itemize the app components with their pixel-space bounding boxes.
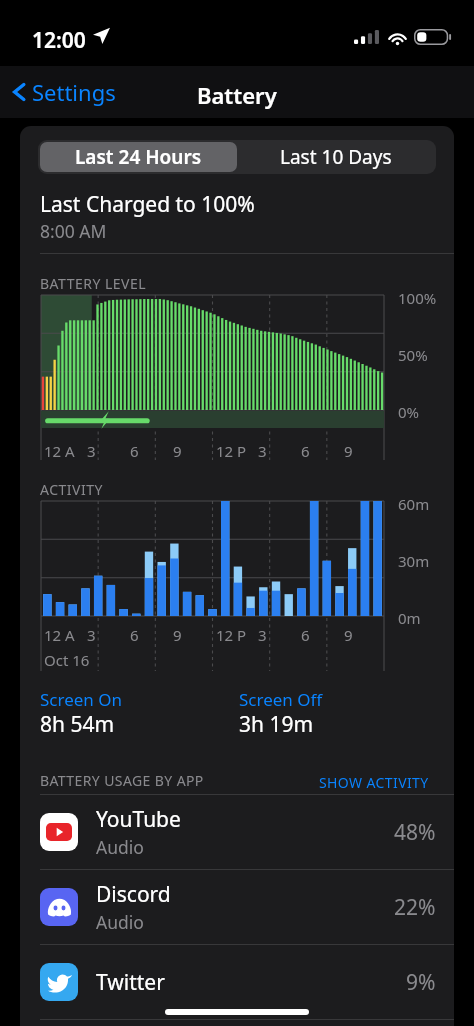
staticText: 0%: [398, 402, 420, 422]
staticText: 3: [258, 625, 267, 645]
staticText: Audio: [96, 910, 144, 934]
staticText: 50%: [398, 345, 428, 365]
staticText: 6: [301, 625, 310, 645]
staticText: Twitter: [96, 968, 165, 997]
staticText: 3: [258, 441, 267, 461]
staticText: 12 A: [44, 625, 75, 645]
staticText: 12 P: [216, 625, 247, 645]
button[interactable]: Discord: [40, 870, 436, 944]
staticText: 9%: [406, 968, 436, 997]
staticText: Settings: [32, 77, 116, 107]
staticText: 12 A: [44, 441, 75, 461]
staticText: 3: [87, 441, 96, 461]
staticText: 3h 19m: [239, 710, 314, 739]
staticText: Screen On: [40, 688, 123, 711]
staticText: Discord: [96, 880, 171, 909]
staticText: 100%: [398, 288, 437, 308]
staticText: Battery: [197, 80, 277, 110]
staticText: 12 P: [216, 441, 247, 461]
staticText: ACTIVITY: [40, 480, 103, 499]
staticText: 6: [130, 441, 139, 461]
button[interactable]: YouTube: [40, 795, 436, 869]
staticText: 12:00: [32, 26, 86, 55]
button[interactable]: Settings: [8, 72, 116, 112]
staticText: Audio: [96, 835, 144, 859]
staticText: YouTube: [96, 805, 181, 834]
staticText: SHOW ACTIVITY: [319, 773, 429, 792]
button[interactable]: SHOW ACTIVITY: [319, 773, 429, 792]
staticText: 3: [87, 625, 96, 645]
button[interactable]: Last 10 Days: [237, 142, 434, 172]
staticText: 22%: [394, 893, 436, 922]
staticText: 6: [130, 625, 139, 645]
staticText: 48%: [394, 818, 436, 847]
staticText: 6: [301, 441, 310, 461]
staticText: 9: [173, 441, 182, 461]
staticText: BATTERY LEVEL: [40, 274, 147, 293]
staticText: Screen Off: [239, 688, 323, 711]
staticText: BATTERY USAGE BY APP: [40, 771, 204, 790]
staticText: 9: [344, 441, 353, 461]
staticText: Oct 16: [44, 650, 90, 670]
staticText: Last 10 Days: [280, 144, 392, 170]
staticText: 9: [344, 625, 353, 645]
staticText: Last Charged to 100%: [40, 190, 255, 219]
staticText: Last 24 Hours: [75, 144, 202, 170]
staticText: 9: [173, 625, 182, 645]
staticText: 30m: [398, 551, 430, 571]
staticText: 60m: [398, 494, 430, 514]
staticText: 0m: [398, 608, 421, 628]
button[interactable]: Twitter: [40, 945, 436, 1019]
staticText: 8:00 AM: [40, 219, 107, 243]
staticText: 8h 54m: [40, 710, 115, 739]
button[interactable]: Last 24 Hours: [40, 142, 237, 172]
